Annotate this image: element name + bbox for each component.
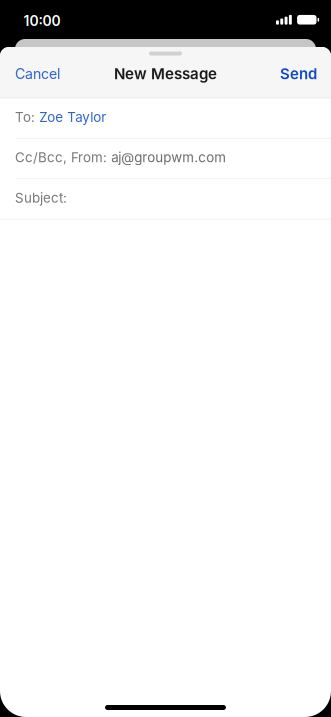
button[interactable]: Send xyxy=(268,58,331,94)
staticText: aj@groupwm.com xyxy=(111,149,226,165)
button[interactable]: Cc/Bcc, From: xyxy=(0,139,331,178)
staticText: New Message xyxy=(114,65,217,83)
staticText: Cancel xyxy=(15,65,60,82)
staticText: Send xyxy=(280,65,317,83)
staticText: Cc/Bcc, From: xyxy=(15,149,107,165)
staticText: To: xyxy=(15,109,35,125)
staticText: Zoe Taylor xyxy=(39,109,106,125)
staticText: Subject: xyxy=(15,190,67,206)
button[interactable]: Subject: xyxy=(0,179,331,219)
button[interactable]: Cancel xyxy=(0,58,72,94)
staticText: 10:00 xyxy=(23,13,60,29)
button[interactable]: To: xyxy=(0,98,331,138)
